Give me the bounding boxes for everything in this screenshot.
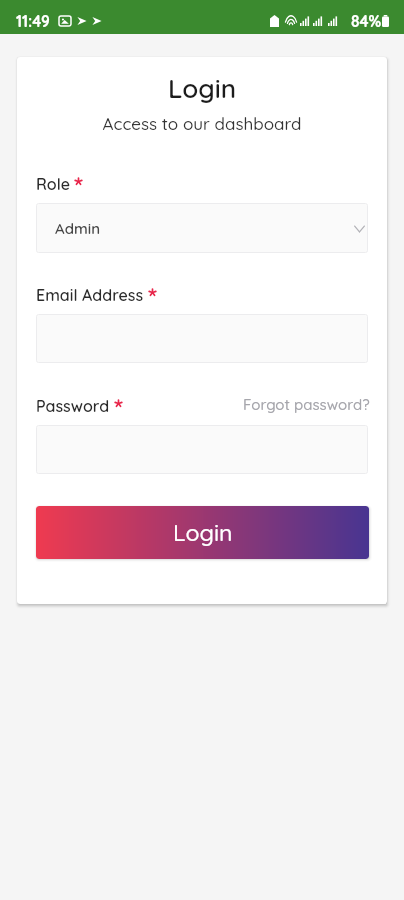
- button[interactable]: Admin: [36, 203, 368, 253]
- button[interactable]: Forgot password?: [243, 395, 370, 414]
- staticText: Email Address: [36, 285, 144, 305]
- staticText: 84%: [351, 11, 382, 30]
- staticText: Admin: [55, 219, 101, 238]
- other: Wi-Fi: [285, 16, 297, 26]
- staticText: Login: [173, 518, 233, 547]
- staticText: 11:49: [16, 11, 50, 30]
- other: Battery saver: [270, 15, 279, 27]
- staticText: Access to our dashboard: [17, 113, 387, 134]
- other: Open role dropdown: [354, 225, 365, 233]
- staticText: Password: [36, 396, 110, 416]
- other: Battery 84 percent: [382, 15, 389, 27]
- staticText: Login: [17, 72, 387, 105]
- staticText: Role: [36, 174, 70, 194]
- button[interactable]: Login: [36, 506, 369, 559]
